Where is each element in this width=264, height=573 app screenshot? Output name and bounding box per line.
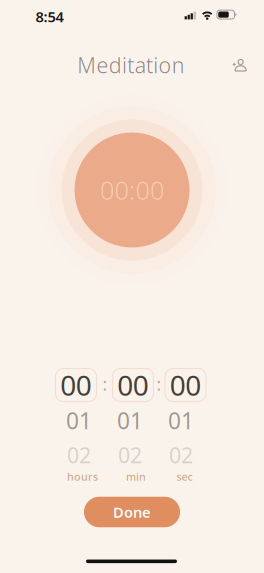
- staticText: 02: [169, 441, 193, 469]
- staticText: :: [102, 372, 107, 395]
- staticText: hours: [67, 469, 98, 484]
- staticText: 00: [170, 366, 201, 404]
- staticText: sec: [176, 469, 192, 484]
- staticText: 00:00: [100, 173, 164, 207]
- staticText: 00: [117, 366, 149, 404]
- staticText: 02: [67, 441, 91, 469]
- staticText: min: [126, 469, 146, 484]
- staticText: 01: [168, 405, 194, 435]
- staticText: Meditation: [77, 51, 185, 79]
- staticText: Done: [113, 502, 151, 522]
- staticText: 01: [117, 405, 143, 435]
- staticText: 8:54: [35, 7, 63, 26]
- button[interactable]: Add person: [227, 52, 253, 78]
- staticText: :: [156, 372, 161, 395]
- staticText: 01: [66, 405, 92, 435]
- button[interactable]: Done: [84, 497, 180, 527]
- staticText: 00: [60, 366, 92, 404]
- staticText: 02: [118, 441, 142, 469]
